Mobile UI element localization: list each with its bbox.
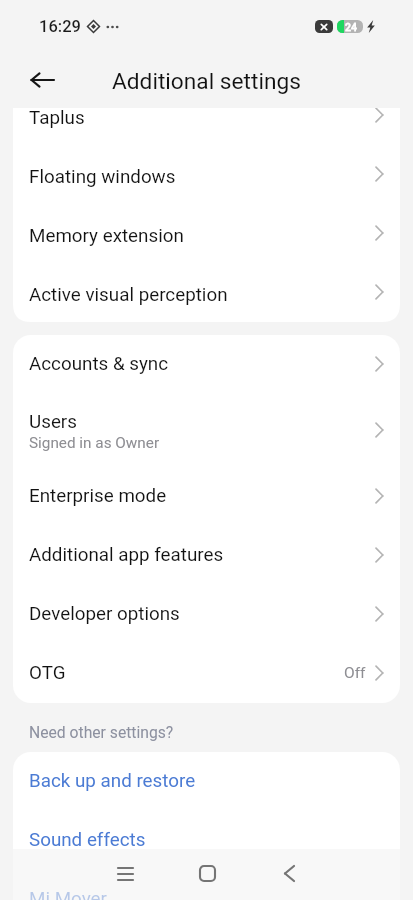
staticText: OTG (29, 662, 66, 684)
button[interactable]: OTG (13, 644, 400, 703)
staticText: Additional settings (112, 68, 301, 95)
staticText: Need other settings? (29, 723, 174, 741)
staticText: Users (29, 411, 77, 433)
button[interactable]: Home (179, 848, 235, 899)
button[interactable]: Additional app features (13, 526, 400, 585)
button[interactable]: Accounts & sync (13, 335, 400, 394)
staticText: Back up and restore (29, 770, 196, 792)
staticText: Developer options (29, 603, 180, 625)
button[interactable]: Back (18, 56, 66, 104)
staticText: Mi Mover (29, 888, 107, 900)
button[interactable]: Active visual perception (13, 263, 400, 322)
button[interactable]: Floating windows (13, 145, 400, 204)
button[interactable]: Back (261, 848, 317, 899)
button[interactable]: Back up and restore (13, 752, 400, 811)
button[interactable]: Enterprise mode (13, 467, 400, 526)
button[interactable]: Recent apps (97, 848, 153, 899)
staticText: Memory extension (29, 225, 184, 247)
staticText: 16:29 (39, 17, 81, 36)
button[interactable]: Mi Mover (13, 870, 400, 900)
staticText: Off (344, 664, 366, 682)
button[interactable]: Memory extension (13, 204, 400, 263)
button[interactable]: Developer options (13, 585, 400, 644)
button[interactable]: Sound effects (13, 811, 400, 870)
staticText: Additional app features (29, 544, 224, 566)
button[interactable]: Taplus (13, 86, 400, 145)
staticText: Sound effects (29, 829, 146, 851)
staticText: Active visual perception (29, 284, 228, 306)
staticText: Taplus (29, 107, 85, 129)
staticText: Accounts & sync (29, 353, 169, 375)
staticText: Floating windows (29, 166, 176, 188)
staticText: Enterprise mode (29, 485, 167, 507)
button[interactable]: Users (13, 394, 400, 467)
staticText: Signed in as Owner (29, 434, 160, 452)
staticText: 24 (345, 21, 357, 33)
